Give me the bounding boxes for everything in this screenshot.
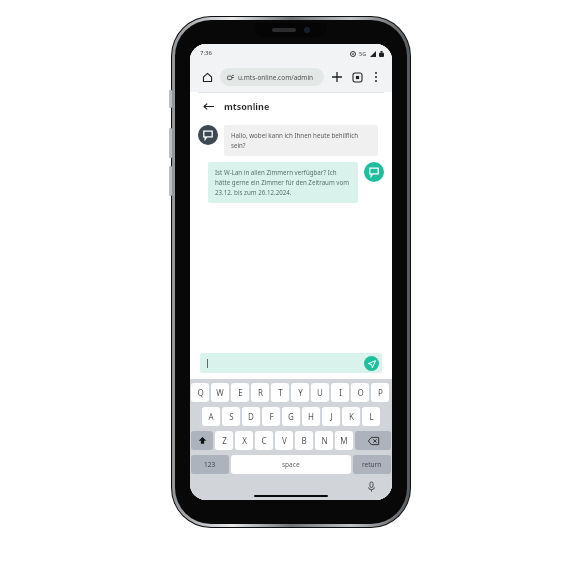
button[interactable]: C (255, 431, 273, 450)
button[interactable]: M (335, 431, 353, 450)
staticText: Ist W-Lan in allen Zimmern verfügbar? Ic… (215, 168, 351, 197)
button[interactable]: Back (200, 98, 216, 114)
button[interactable]: Tabs (348, 68, 366, 86)
staticText: C (261, 435, 267, 446)
button[interactable]: New tab (328, 68, 346, 86)
button[interactable]: D (242, 407, 260, 426)
button[interactable]: X (235, 431, 253, 450)
button[interactable]: F (262, 407, 280, 426)
staticText: 123 (204, 460, 216, 469)
staticText: N (321, 435, 328, 446)
button[interactable]: S (222, 407, 240, 426)
button[interactable]: R (251, 383, 269, 402)
staticText: W (216, 387, 224, 398)
button[interactable]: Backspace (355, 431, 391, 450)
staticText: H (308, 411, 314, 422)
staticText: J (330, 411, 333, 422)
button[interactable]: L (362, 407, 380, 426)
staticText: V (282, 435, 287, 446)
button[interactable]: u.mts-online.com/admin (220, 68, 324, 86)
button[interactable]: V (275, 431, 293, 450)
button[interactable]: I (331, 383, 349, 402)
button[interactable]: H (302, 407, 320, 426)
staticText: K (349, 411, 354, 422)
button[interactable]: O (351, 383, 369, 402)
staticText: D (248, 411, 254, 422)
button[interactable]: A (202, 407, 220, 426)
staticText: mtsonline (224, 100, 270, 112)
staticText: O (357, 387, 364, 398)
button[interactable]: G (282, 407, 300, 426)
button[interactable]: Send (200, 353, 382, 373)
staticText: Hallo, wobei kann ich Ihnen heute behilf… (231, 131, 371, 150)
button[interactable]: W (211, 383, 229, 402)
button[interactable]: T (271, 383, 289, 402)
button[interactable]: Home (198, 68, 216, 86)
button[interactable]: Y (291, 383, 309, 402)
staticText: B (301, 435, 307, 446)
button[interactable]: U (311, 383, 329, 402)
staticText: T (278, 387, 283, 398)
button[interactable]: Q (191, 383, 209, 402)
staticText: F (269, 411, 274, 422)
button[interactable]: P (371, 383, 389, 402)
staticText: space (282, 460, 300, 469)
staticText: R (258, 387, 263, 398)
staticText: I (339, 387, 342, 398)
staticText: P (378, 387, 383, 398)
staticText: u.mts-online.com/admin (238, 73, 314, 82)
button[interactable]: More options (368, 69, 384, 85)
button[interactable]: Voice input (364, 480, 378, 494)
button[interactable]: Shift (191, 431, 213, 450)
staticText: X (242, 435, 247, 446)
button[interactable]: Z (215, 431, 233, 450)
staticText: Z (222, 435, 227, 446)
staticText: U (317, 387, 323, 398)
button[interactable]: return (353, 455, 391, 474)
staticText: 5G (359, 50, 367, 57)
button[interactable]: B (295, 431, 313, 450)
staticText: M (340, 435, 348, 446)
staticText: G (288, 411, 294, 422)
staticText: L (369, 411, 374, 422)
staticText: A (208, 411, 214, 422)
staticText: S (229, 411, 234, 422)
staticText: Y (298, 387, 303, 398)
button[interactable]: K (342, 407, 360, 426)
button[interactable]: 123 (191, 455, 229, 474)
staticText: Q (197, 387, 204, 398)
button[interactable]: N (315, 431, 333, 450)
button[interactable]: Send (364, 356, 379, 371)
staticText: E (238, 387, 243, 398)
button[interactable]: E (231, 383, 249, 402)
button[interactable]: J (322, 407, 340, 426)
button[interactable]: space (231, 455, 351, 474)
staticText: return (362, 460, 382, 469)
staticText: 7:36 (200, 49, 212, 57)
